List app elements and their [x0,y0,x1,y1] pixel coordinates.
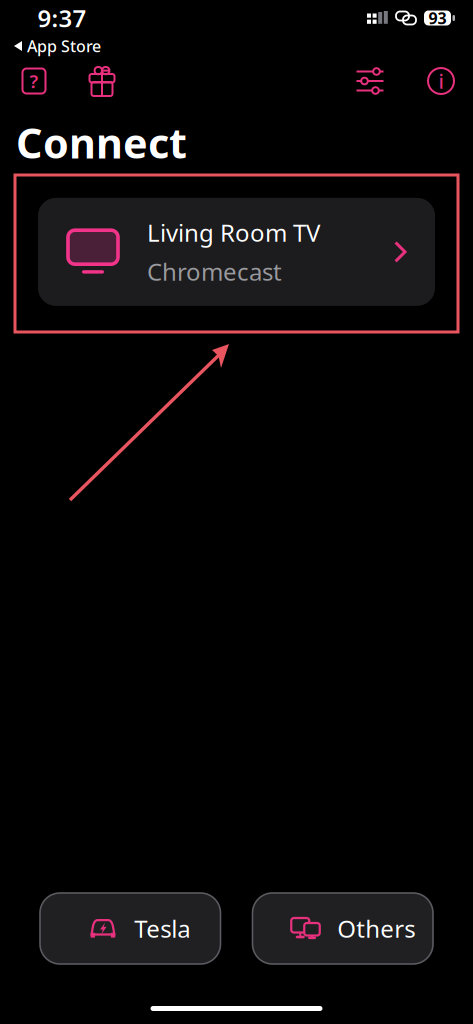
staticText: App Store [27,35,101,57]
staticText: 93 [428,7,446,29]
staticText: i [438,68,443,94]
staticText: Connect [16,115,187,170]
staticText: 9:37 [37,2,86,34]
button[interactable]: Tesla [40,893,220,964]
staticText: Tesla [134,913,190,944]
staticText: ? [29,69,38,93]
staticText: Living Room TV [147,216,320,248]
staticText: Others [337,913,415,944]
button[interactable]: Settings [341,58,399,104]
staticText: Chromecast [147,255,282,287]
button[interactable]: Information [411,58,471,104]
button[interactable]: Rewards [62,58,142,104]
button[interactable]: Others [252,893,433,964]
button[interactable]: Help [6,58,62,104]
button[interactable]: Living Room TV [38,198,435,306]
